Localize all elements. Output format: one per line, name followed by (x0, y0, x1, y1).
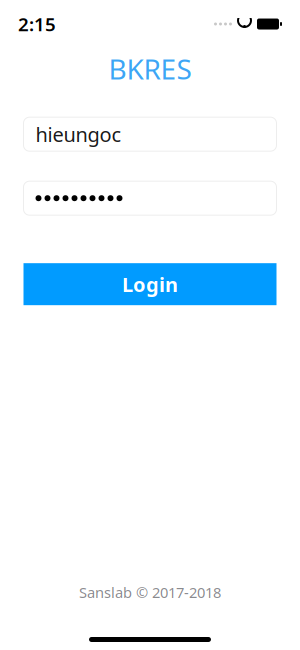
staticText: hieungoc (35, 121, 121, 147)
staticText: Login (122, 271, 178, 297)
button[interactable]: Login (23, 263, 276, 305)
staticText: Sanslab © 2017-2018 (79, 582, 221, 602)
staticText: BKRES (108, 50, 191, 87)
staticText: 2:15 (18, 12, 56, 36)
